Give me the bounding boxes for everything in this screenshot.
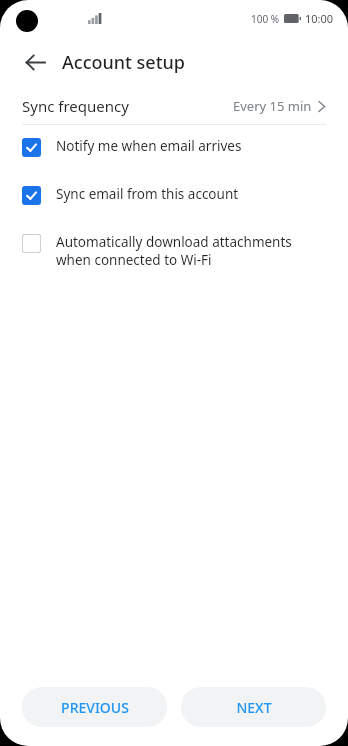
staticText: Notify me when email arrives [56,137,242,155]
staticText: 100 % [251,12,280,26]
button[interactable]: Automatically download attachments when … [0,233,348,269]
staticText: Every 15 min [233,97,312,115]
button[interactable]: Back [13,40,57,84]
staticText: Sync frequency [22,96,129,116]
staticText: 10:00 [305,11,334,26]
button[interactable]: Sync email from this account [0,185,348,205]
staticText: NEXT [236,698,272,717]
button[interactable]: NEXT [181,687,326,727]
staticText: Account setup [62,50,186,75]
button[interactable]: Sync frequency [0,88,348,124]
button[interactable]: Notify me when email arrives [0,137,348,157]
staticText: Sync email from this account [56,185,239,203]
staticText: Automatically download attachments when … [56,233,326,269]
button[interactable]: PREVIOUS [22,687,167,727]
staticText: PREVIOUS [61,698,129,717]
